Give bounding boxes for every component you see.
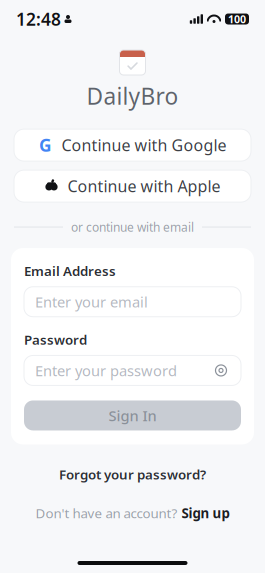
staticText: Continue with Google — [61, 134, 226, 156]
button[interactable]: Sign In — [24, 400, 241, 430]
staticText: Continue with Apple — [67, 175, 220, 197]
button[interactable]: Forgot your password? — [51, 462, 214, 486]
button[interactable]: Don't have an account? — [27, 501, 237, 525]
staticText: Sign In — [108, 406, 156, 425]
staticText: Email Address — [24, 262, 116, 280]
staticText: Enter your email — [35, 292, 148, 311]
staticText: G — [39, 134, 52, 157]
staticText: Enter your password — [35, 361, 177, 380]
staticText: 12:48 — [16, 7, 61, 30]
staticText: or continue with email — [71, 219, 194, 235]
staticText: Don't have an account? — [35, 504, 177, 522]
button[interactable]: G — [14, 129, 251, 161]
staticText: Password — [24, 331, 87, 348]
staticText: Sign up — [181, 504, 229, 522]
button[interactable]: Continue with Apple — [14, 170, 251, 202]
staticText: 100 — [228, 12, 246, 26]
staticText: Forgot your password? — [59, 465, 206, 483]
button[interactable]: Show password — [212, 361, 230, 379]
staticText: DailyBro — [86, 81, 178, 111]
